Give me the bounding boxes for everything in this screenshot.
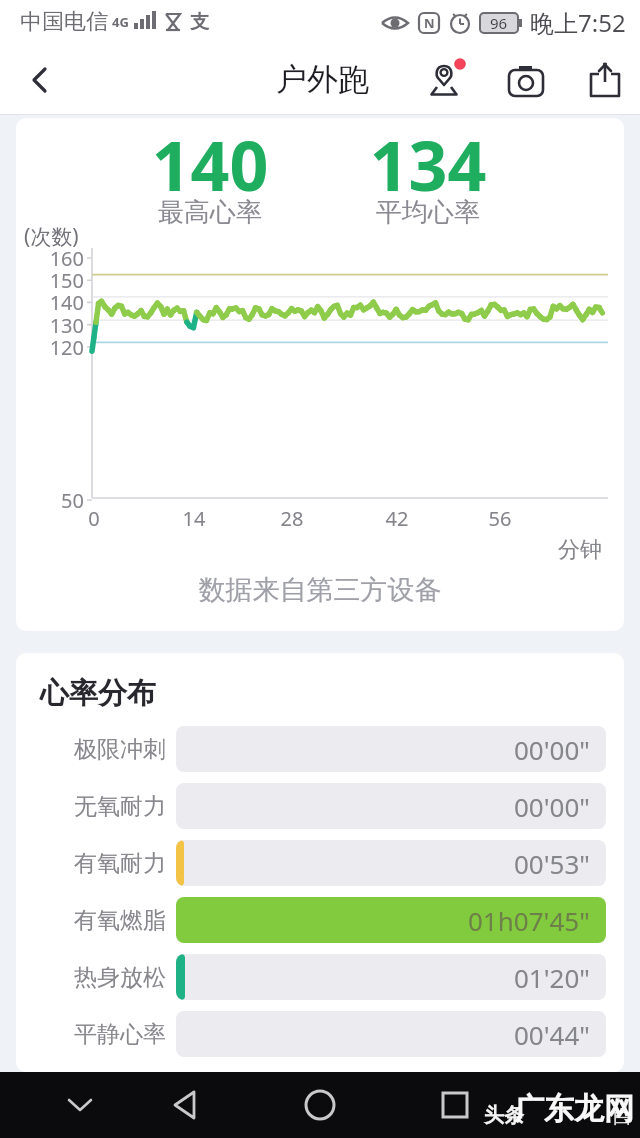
button[interactable]: 00'00"	[176, 783, 606, 829]
staticText: 14	[169, 505, 219, 532]
button[interactable]: 01'20"	[176, 954, 606, 1000]
staticText: 数据来自第三方设备	[16, 573, 624, 607]
staticText: 极限冲刺	[74, 735, 166, 764]
staticText: 42	[372, 505, 422, 532]
staticText: 有氧耐力	[74, 849, 166, 878]
button[interactable]: 01h07'45"	[176, 897, 606, 943]
staticText: 150	[42, 267, 84, 294]
staticText: 28	[267, 505, 317, 532]
staticText: 4G	[112, 13, 129, 31]
staticText: 中国电信	[20, 8, 108, 36]
staticText: 平均心率	[358, 196, 498, 229]
button[interactable]	[424, 57, 470, 103]
button[interactable]	[503, 57, 549, 103]
button[interactable]: 平静心率	[30, 1011, 166, 1057]
button[interactable]	[582, 57, 628, 103]
staticText: 00'53"	[514, 846, 590, 881]
staticText: 热身放松	[74, 963, 166, 992]
button[interactable]	[18, 58, 62, 102]
staticText: 160	[42, 245, 84, 272]
staticText: 0	[69, 505, 119, 532]
staticText: 支	[190, 10, 209, 34]
staticText: 心率分布	[40, 675, 156, 712]
staticText: (次数)	[24, 222, 79, 251]
staticText: 广东龙网	[514, 1090, 634, 1128]
staticText: 00'00"	[514, 789, 590, 824]
button[interactable]	[433, 1083, 477, 1127]
staticText: 56	[475, 505, 525, 532]
button[interactable]	[298, 1083, 342, 1127]
button[interactable]	[58, 1083, 102, 1127]
staticText: N	[424, 14, 435, 32]
staticText: 140	[42, 289, 84, 316]
staticText: 无氧耐力	[74, 792, 166, 821]
staticText: 130	[42, 312, 84, 339]
button[interactable]: 00'53"	[176, 840, 606, 886]
button[interactable]: 无氧耐力	[30, 783, 166, 829]
button[interactable]	[163, 1083, 207, 1127]
staticText: 00'00"	[514, 732, 590, 767]
button[interactable]: 00'00"	[176, 726, 606, 772]
staticText: 134	[358, 118, 498, 211]
staticText: 头条	[484, 1103, 524, 1128]
staticText: 96	[490, 13, 508, 33]
staticText: 01'20"	[514, 960, 590, 995]
staticText: 01h07'45"	[468, 903, 590, 938]
staticText: 白	[613, 1105, 632, 1129]
staticText: 120	[42, 334, 84, 361]
staticText: 有氧燃脂	[74, 906, 166, 935]
button[interactable]: 有氧燃脂	[30, 897, 166, 943]
button[interactable]: 极限冲刺	[30, 726, 166, 772]
button[interactable]: 有氧耐力	[30, 840, 166, 886]
staticText: 平静心率	[74, 1020, 166, 1049]
staticText: 户外跑	[276, 60, 369, 99]
staticText: 50	[42, 487, 84, 514]
button[interactable]: 热身放松	[30, 954, 166, 1000]
staticText: 00'44"	[514, 1017, 590, 1052]
staticText: 分钟	[546, 536, 602, 564]
staticText: 晚上7:52	[530, 6, 626, 39]
staticText: 最高心率	[140, 196, 280, 229]
staticText: 140	[140, 118, 280, 211]
button[interactable]: 00'44"	[176, 1011, 606, 1057]
